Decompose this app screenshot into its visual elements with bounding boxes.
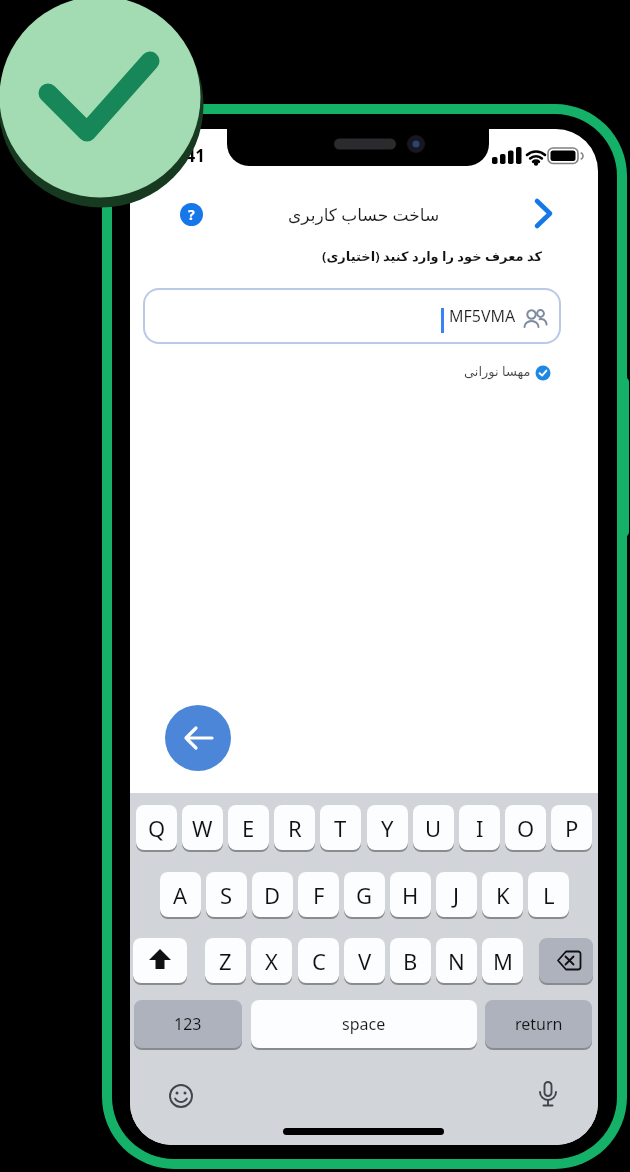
staticText: T — [334, 813, 347, 843]
button[interactable]: ? — [180, 203, 203, 226]
button[interactable]: W — [182, 805, 223, 850]
button[interactable]: P — [551, 805, 592, 850]
button[interactable]: J — [436, 872, 477, 917]
staticText: S — [220, 880, 233, 910]
staticText: A — [173, 880, 188, 910]
staticText: B — [403, 946, 418, 976]
button[interactable]: space — [251, 1000, 477, 1048]
button[interactable] — [535, 1080, 561, 1112]
button[interactable]: H — [390, 872, 431, 917]
button[interactable]: T — [320, 805, 361, 850]
button[interactable]: K — [482, 872, 523, 917]
staticText: V — [358, 946, 372, 976]
staticText: O — [517, 813, 535, 843]
staticText: مهسا نورانی — [464, 362, 531, 380]
staticText: K — [496, 880, 510, 910]
button[interactable]: D — [252, 872, 293, 917]
button[interactable]: return — [485, 1000, 592, 1048]
button[interactable]: E — [228, 805, 269, 850]
staticText: P — [565, 813, 579, 843]
staticText: H — [402, 880, 419, 910]
staticText: Y — [381, 813, 394, 843]
staticText: I — [476, 813, 484, 843]
staticText: 123 — [174, 1013, 202, 1035]
staticText: space — [342, 1013, 386, 1035]
button[interactable]: G — [344, 872, 385, 917]
staticText: N — [448, 946, 465, 976]
staticText: F — [313, 880, 325, 910]
staticText: R — [288, 813, 302, 843]
button[interactable] — [145, 290, 559, 342]
button[interactable]: O — [505, 805, 546, 850]
staticText: C — [312, 946, 326, 976]
button[interactable] — [168, 1083, 194, 1109]
staticText: return — [515, 1013, 563, 1035]
button[interactable]: S — [206, 872, 247, 917]
button[interactable] — [530, 197, 558, 230]
button[interactable] — [133, 938, 187, 983]
button[interactable]: 123 — [134, 1000, 242, 1048]
button[interactable]: I — [459, 805, 500, 850]
staticText: ساخت حساب کاربری — [288, 203, 440, 226]
staticText: M — [493, 946, 513, 976]
staticText: U — [425, 813, 442, 843]
staticText: Z — [219, 946, 232, 976]
staticText: L — [543, 880, 555, 910]
button[interactable]: A — [160, 872, 201, 917]
staticText: X — [265, 946, 278, 976]
staticText: کد معرف خود را وارد کنید (اختیاری) — [322, 247, 542, 265]
button[interactable]: F — [298, 872, 339, 917]
button[interactable]: B — [390, 938, 431, 983]
button[interactable]: Q — [136, 805, 177, 850]
button[interactable]: Y — [367, 805, 408, 850]
staticText: W — [192, 813, 213, 843]
button[interactable] — [165, 705, 231, 771]
staticText: Q — [148, 813, 166, 843]
staticText: ? — [188, 205, 195, 224]
button[interactable]: U — [413, 805, 454, 850]
staticText: D — [264, 880, 281, 910]
button[interactable]: M — [482, 938, 523, 983]
button[interactable]: N — [436, 938, 477, 983]
staticText: G — [356, 880, 373, 910]
button[interactable]: X — [251, 938, 292, 983]
button[interactable]: L — [528, 872, 569, 917]
staticText: E — [242, 813, 255, 843]
button[interactable] — [539, 938, 593, 983]
button[interactable]: Z — [205, 938, 246, 983]
staticText: J — [453, 880, 460, 910]
staticText: 9:41 — [171, 144, 205, 167]
button[interactable]: V — [344, 938, 385, 983]
staticText: MF5VMA — [449, 305, 516, 327]
button[interactable]: R — [274, 805, 315, 850]
button[interactable]: C — [298, 938, 339, 983]
